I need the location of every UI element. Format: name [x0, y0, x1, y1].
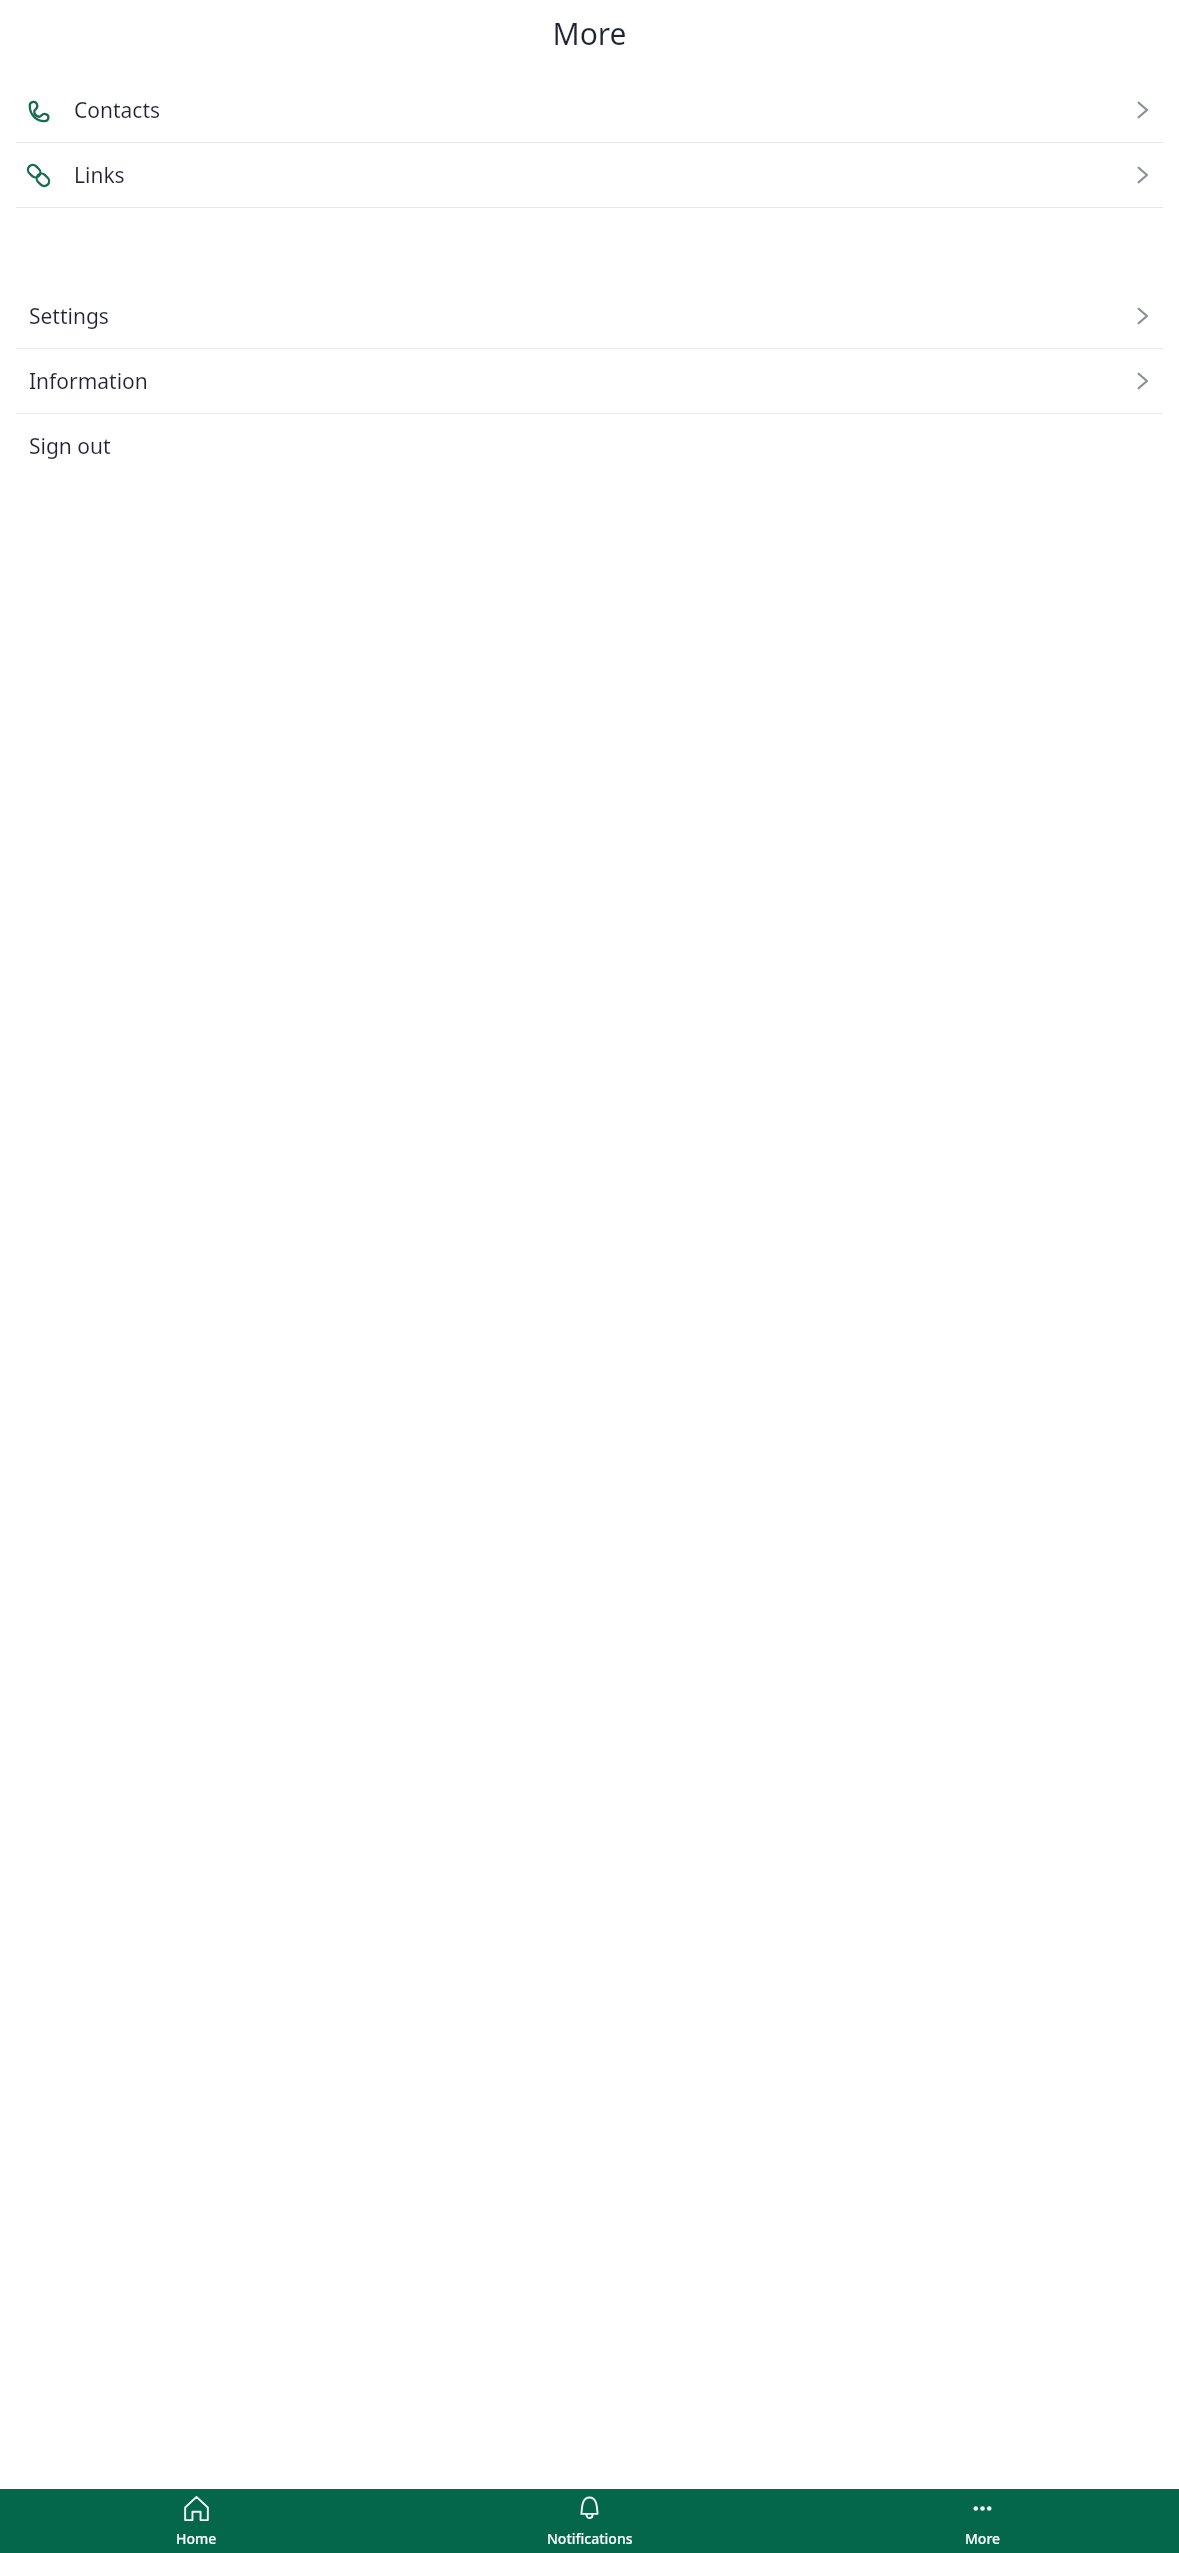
button[interactable]: Contacts [0, 78, 1179, 142]
staticText: More [0, 13, 1179, 54]
staticText: Links [74, 161, 125, 190]
staticText: Settings [29, 302, 109, 331]
button[interactable]: More [786, 2489, 1179, 2553]
staticText: Notifications [547, 2529, 633, 2548]
other: More [969, 2495, 996, 2522]
staticText: Home [176, 2529, 217, 2548]
staticText: More [965, 2529, 1001, 2548]
button[interactable]: Links [0, 143, 1179, 207]
button[interactable]: Settings [0, 284, 1179, 348]
button[interactable]: Notifications [393, 2489, 786, 2553]
staticText: Information [29, 367, 148, 396]
button[interactable]: Sign out [0, 414, 1179, 478]
button[interactable]: Information [0, 349, 1179, 413]
other: Notifications [576, 2495, 603, 2522]
staticText: Contacts [74, 96, 161, 125]
button[interactable]: Home [0, 2489, 393, 2553]
other: Home [183, 2495, 210, 2522]
staticText: Sign out [29, 432, 111, 461]
